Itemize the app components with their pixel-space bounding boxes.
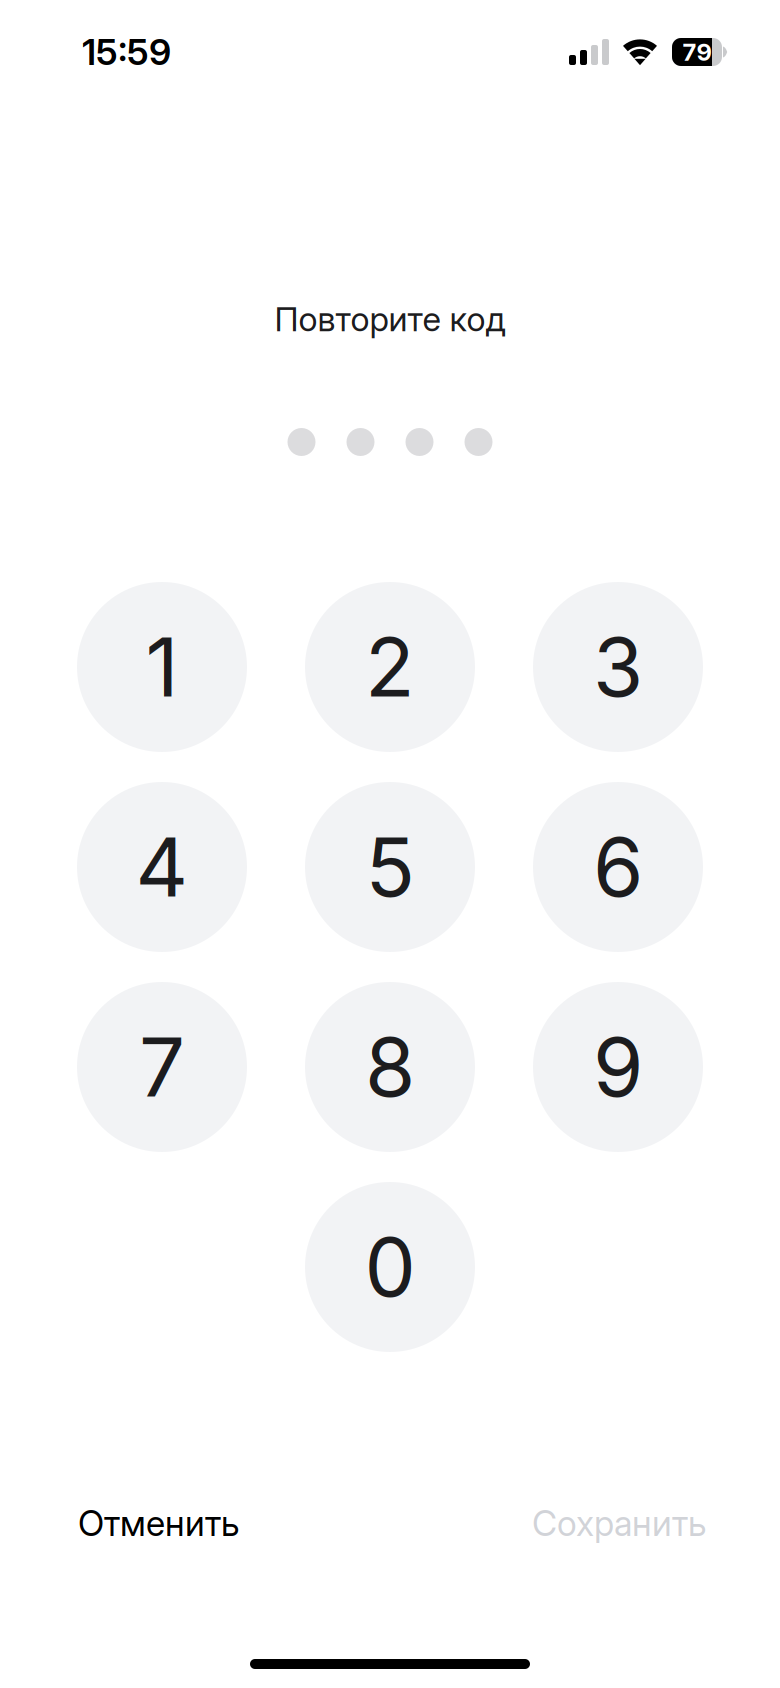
- staticText: Отменить: [78, 1502, 240, 1544]
- staticText: Сохранить: [532, 1502, 707, 1544]
- staticText: 15:59: [82, 30, 171, 74]
- staticText: 3: [593, 618, 643, 716]
- button[interactable]: 9: [533, 982, 703, 1152]
- staticText: 6: [593, 818, 643, 916]
- staticText: 9: [593, 1018, 643, 1116]
- staticText: 8: [365, 1018, 415, 1116]
- button[interactable]: 5: [305, 782, 475, 952]
- button[interactable]: 2: [305, 582, 475, 752]
- staticText: 0: [364, 1218, 415, 1316]
- staticText: 1: [145, 618, 178, 716]
- button[interactable]: 0: [305, 1182, 475, 1352]
- button[interactable]: Сохранить: [532, 1499, 707, 1548]
- button[interactable]: 1: [77, 582, 247, 752]
- staticText: 4: [135, 818, 188, 916]
- staticText: 79: [682, 37, 711, 66]
- button[interactable]: 7: [77, 982, 247, 1152]
- button[interactable]: 4: [77, 782, 247, 952]
- staticText: 7: [139, 1018, 185, 1116]
- button[interactable]: 6: [533, 782, 703, 952]
- staticText: 2: [365, 618, 415, 716]
- button[interactable]: 8: [305, 982, 475, 1152]
- staticText: Повторите код: [274, 299, 505, 339]
- staticText: 5: [365, 818, 414, 916]
- button[interactable]: Отменить: [78, 1499, 240, 1548]
- button[interactable]: 3: [533, 582, 703, 752]
